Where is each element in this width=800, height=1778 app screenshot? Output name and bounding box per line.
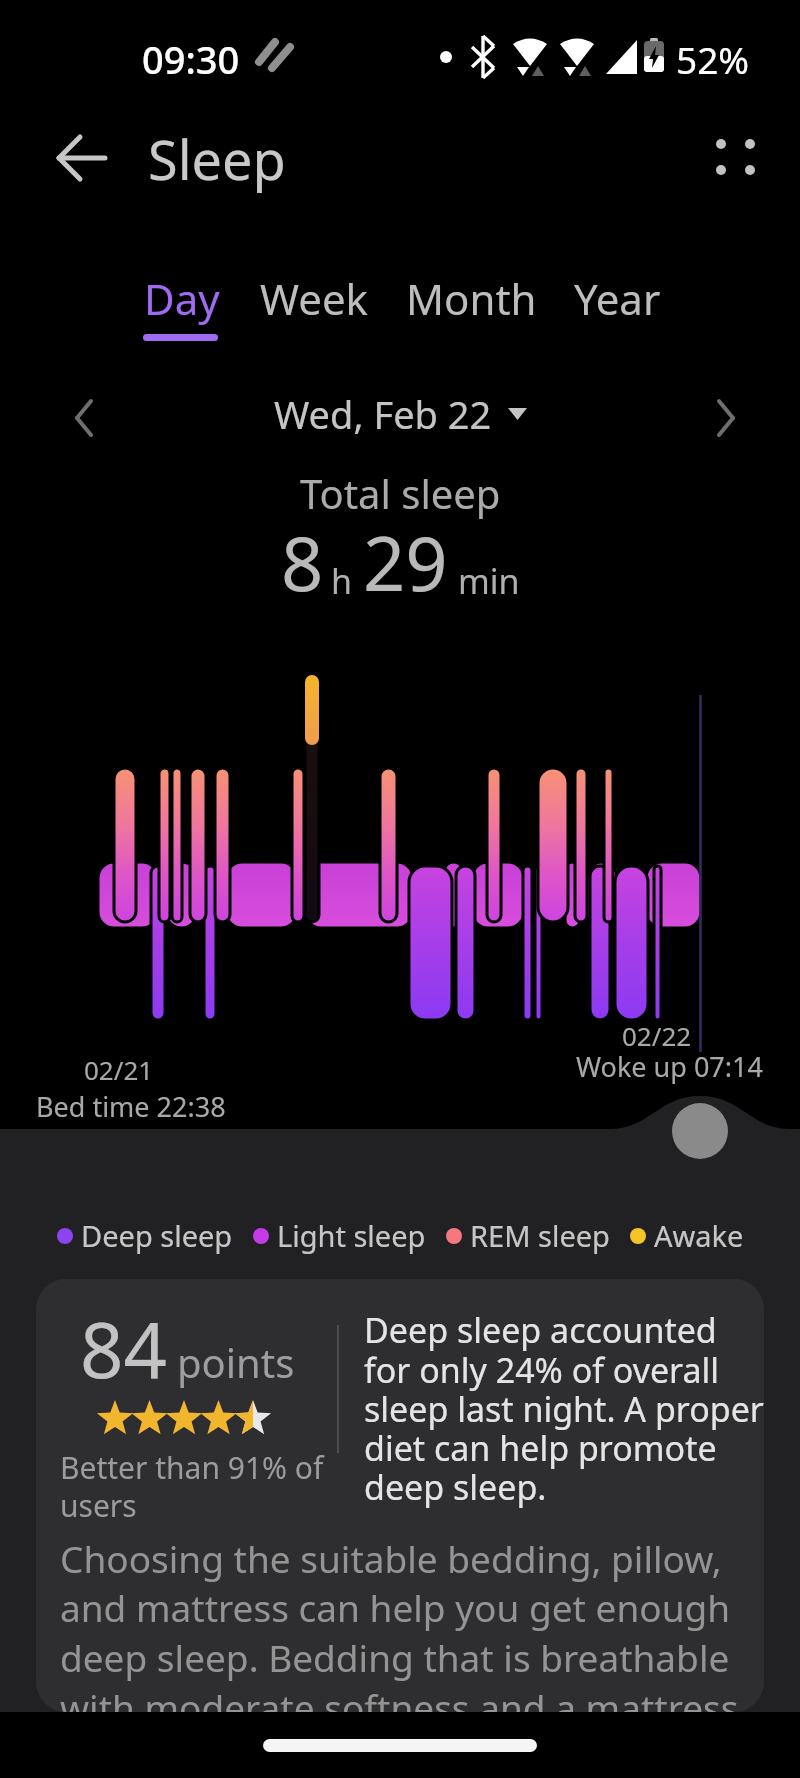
- button[interactable]: Day: [120, 258, 240, 350]
- staticText: Wed, Feb 22: [274, 388, 492, 440]
- staticText: Deep sleep accounted for only 24% of ove…: [364, 1307, 764, 1510]
- button[interactable]: Month: [392, 258, 544, 350]
- staticText: Day: [144, 270, 220, 327]
- staticText: 02/22: [622, 1018, 692, 1053]
- staticText: 09:30: [142, 33, 240, 85]
- staticText: REM sleep: [470, 1216, 610, 1255]
- staticText: h: [331, 558, 353, 604]
- staticText: Total sleep: [300, 466, 501, 520]
- staticText: Woke up 07:14: [576, 1048, 763, 1085]
- staticText: Year: [574, 270, 661, 327]
- staticText: 02/21: [84, 1052, 154, 1087]
- button[interactable]: [672, 1103, 728, 1159]
- staticText: Light sleep: [277, 1216, 426, 1255]
- staticText: 52%: [676, 34, 750, 84]
- button[interactable]: Awake: [630, 1216, 744, 1255]
- button[interactable]: 84: [36, 1279, 764, 1712]
- staticText: 84: [80, 1297, 167, 1401]
- staticText: Sleep: [148, 122, 286, 196]
- staticText: 29: [363, 512, 448, 613]
- button[interactable]: [263, 1739, 537, 1752]
- button[interactable]: [50, 128, 114, 188]
- staticText: Bed time 22:38: [36, 1088, 226, 1125]
- staticText: min: [458, 558, 520, 604]
- staticText: 8: [281, 512, 324, 613]
- button[interactable]: Year: [560, 258, 670, 350]
- button[interactable]: Week: [248, 258, 373, 350]
- button[interactable]: Wed, Feb 22: [274, 388, 527, 440]
- staticText: Better than 91% of users: [60, 1447, 324, 1526]
- staticText: points: [177, 1335, 295, 1389]
- staticText: Awake: [654, 1216, 744, 1255]
- staticText: Deep sleep: [81, 1216, 233, 1255]
- button[interactable]: Light sleep: [253, 1216, 426, 1255]
- staticText: Week: [260, 270, 369, 327]
- staticText: Month: [406, 270, 537, 327]
- button[interactable]: Deep sleep: [57, 1216, 233, 1255]
- button[interactable]: [695, 120, 775, 192]
- button[interactable]: REM sleep: [446, 1216, 610, 1255]
- button[interactable]: [56, 390, 112, 446]
- staticText: Choosing the suitable bedding, pillow, a…: [60, 1533, 739, 1712]
- button[interactable]: [698, 390, 754, 446]
